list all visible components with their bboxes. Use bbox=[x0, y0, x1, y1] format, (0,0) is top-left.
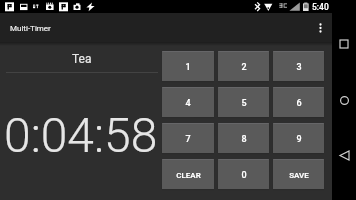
button[interactable]: 5 bbox=[218, 87, 269, 117]
button[interactable]: 7 bbox=[162, 123, 214, 153]
staticText: 1 bbox=[185, 62, 191, 73]
button[interactable]: 4 bbox=[162, 87, 214, 117]
staticText: 3 bbox=[296, 62, 302, 73]
button[interactable]: CLEAR bbox=[162, 159, 214, 189]
button[interactable]: SAVE bbox=[273, 159, 324, 189]
button[interactable]: 0 bbox=[218, 159, 269, 189]
staticText: Multi-Timer bbox=[10, 24, 51, 33]
button[interactable]: 6 bbox=[273, 87, 324, 117]
staticText: 4 bbox=[185, 98, 191, 109]
button[interactable]: Home bbox=[332, 88, 356, 112]
staticText: 5 bbox=[241, 98, 247, 109]
staticText: CLEAR bbox=[176, 171, 201, 180]
button[interactable]: Tea bbox=[6, 49, 158, 69]
staticText: 9 bbox=[296, 134, 302, 145]
staticText: 5:40 bbox=[312, 2, 329, 12]
staticText: 6 bbox=[296, 98, 302, 109]
staticText: 7 bbox=[185, 134, 191, 145]
button[interactable]: More options bbox=[308, 16, 332, 40]
staticText: Tea bbox=[72, 52, 92, 66]
staticText: 2 bbox=[241, 62, 247, 73]
staticText: SAVE bbox=[289, 171, 309, 180]
staticText: 0 bbox=[241, 170, 247, 181]
button[interactable]: 1 bbox=[162, 51, 214, 81]
staticText: 0:04:58 bbox=[4, 107, 158, 163]
button[interactable]: Recents bbox=[332, 32, 356, 56]
button[interactable]: 9 bbox=[273, 123, 324, 153]
button[interactable]: 8 bbox=[218, 123, 269, 153]
staticText: 8 bbox=[241, 134, 247, 145]
button[interactable]: 3 bbox=[273, 51, 324, 81]
button[interactable]: 2 bbox=[218, 51, 269, 81]
button[interactable]: Back bbox=[332, 143, 356, 167]
